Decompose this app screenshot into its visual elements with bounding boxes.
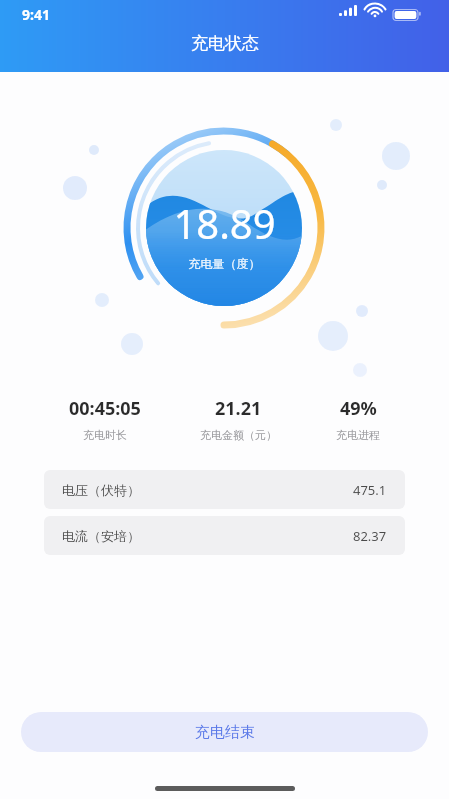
staticText: 充电进程: [336, 428, 380, 442]
staticText: 电流（安培）: [62, 528, 140, 544]
staticText: 充电金额（元）: [200, 428, 277, 442]
staticText: 18.89: [0, 196, 449, 250]
staticText: 21.21: [215, 396, 262, 421]
staticText: 充电时长: [83, 428, 127, 442]
staticText: 49%: [340, 396, 377, 421]
staticText: 充电量（度）: [0, 256, 449, 271]
staticText: 82.37: [353, 527, 387, 545]
button[interactable]: 电流（安培）: [44, 516, 405, 555]
button[interactable]: 充电结束: [21, 712, 428, 752]
staticText: 475.1: [353, 481, 387, 499]
staticText: 充电结束: [195, 723, 255, 742]
staticText: 充电状态: [191, 33, 259, 54]
staticText: 00:45:05: [69, 396, 141, 421]
staticText: 电压（伏特）: [62, 482, 140, 498]
button[interactable]: 电压（伏特）: [44, 470, 405, 509]
staticText: 9:41: [22, 5, 50, 24]
